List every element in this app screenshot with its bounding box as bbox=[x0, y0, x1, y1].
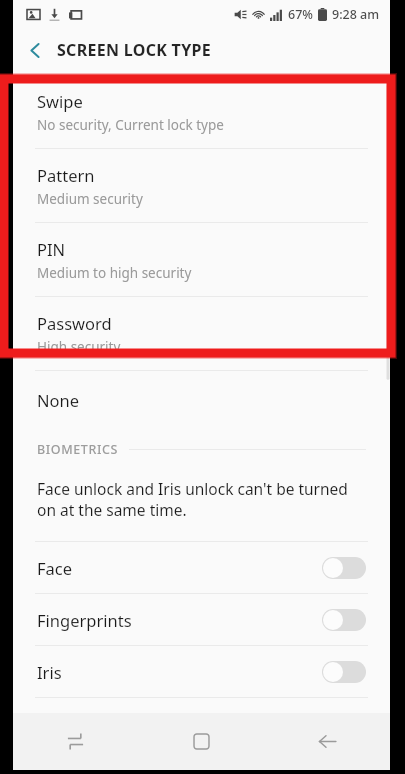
button[interactable]: Back bbox=[13, 28, 57, 72]
button[interactable]: Iris bbox=[13, 646, 390, 698]
staticText: Fingerprints bbox=[37, 609, 322, 631]
button[interactable]: Back bbox=[264, 713, 390, 770]
staticText: High security bbox=[37, 338, 121, 356]
staticText: Face bbox=[37, 557, 322, 579]
button[interactable]: Recents bbox=[13, 713, 138, 770]
staticText: Medium security bbox=[37, 190, 143, 208]
staticText: SCREEN LOCK TYPE bbox=[57, 39, 211, 61]
staticText: Password bbox=[37, 312, 112, 334]
button[interactable]: Swipe bbox=[13, 75, 390, 149]
button[interactable]: Pattern bbox=[13, 149, 390, 223]
staticText: BIOMETRICS bbox=[37, 441, 119, 458]
button[interactable]: Fingerprints bbox=[13, 594, 390, 646]
button[interactable]: Home bbox=[138, 713, 264, 770]
staticText: 67% bbox=[288, 6, 313, 23]
staticText: Swipe bbox=[37, 90, 83, 112]
button[interactable]: PIN bbox=[13, 223, 390, 297]
staticText: Medium to high security bbox=[37, 264, 192, 282]
staticText: None bbox=[37, 389, 80, 411]
staticText: 9:28 am bbox=[332, 6, 380, 23]
button[interactable]: Face bbox=[13, 542, 390, 594]
staticText: Iris bbox=[37, 661, 322, 683]
staticText: No security, Current lock type bbox=[37, 116, 224, 134]
staticText: Pattern bbox=[37, 164, 95, 186]
staticText: PIN bbox=[37, 238, 66, 260]
staticText: Face unlock and Iris unlock can't be tur… bbox=[37, 478, 354, 521]
button[interactable]: None bbox=[13, 371, 390, 429]
button[interactable]: Password bbox=[13, 297, 390, 371]
